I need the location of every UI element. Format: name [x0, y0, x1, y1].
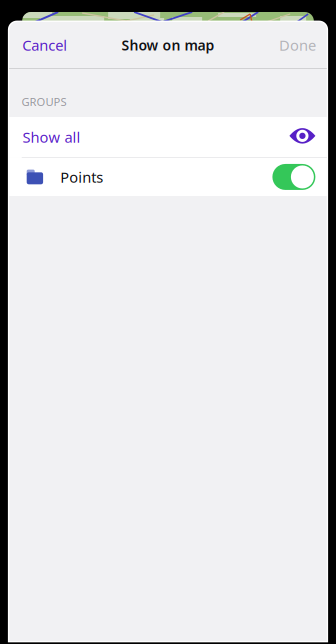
button[interactable]: Show all groups on the map [289, 128, 315, 146]
button[interactable]: Cancel [9, 22, 77, 68]
button[interactable]: Points [9, 158, 327, 196]
button[interactable]: Show Points on the map [272, 164, 315, 190]
staticText: GROUPS [22, 94, 67, 109]
button[interactable]: Show all [9, 117, 327, 157]
staticText: Done [279, 35, 316, 55]
staticText: Cancel [22, 35, 67, 55]
staticText: Points [60, 167, 103, 187]
button[interactable]: Done [269, 22, 327, 68]
staticText: Show all [22, 127, 80, 147]
staticText: Show on map [121, 35, 214, 54]
